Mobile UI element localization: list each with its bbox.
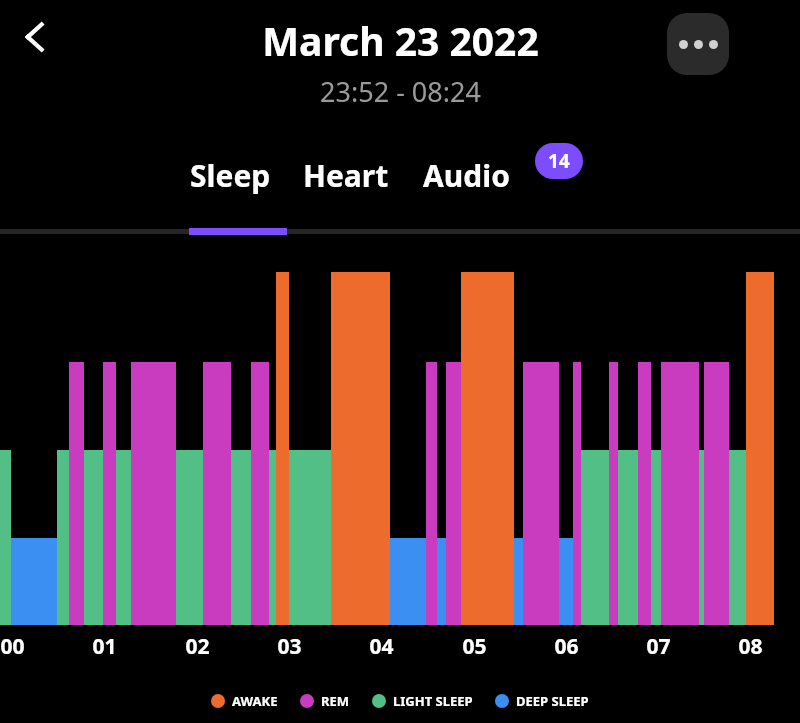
button[interactable]: Back [6,8,64,66]
staticText: 14 [548,148,570,174]
staticText: Sleep [190,155,271,196]
staticText: 00 [0,632,25,661]
staticText: 08 [738,632,763,661]
button[interactable]: Heart [301,155,391,196]
staticText: 04 [369,632,394,661]
staticText: 03 [277,632,302,661]
staticText: LIGHT SLEEP [393,692,473,710]
staticText: 01 [92,632,117,661]
staticText: 02 [185,632,210,661]
staticText: Audio [423,155,510,196]
button[interactable]: Sleep [188,155,273,196]
staticText: AWAKE [232,692,278,710]
staticText: 05 [462,632,487,661]
button[interactable]: More options [667,13,729,75]
staticText: March 23 2022 [262,14,539,67]
staticText: 07 [646,632,671,661]
staticText: 23:52 - 08:24 [320,73,481,110]
staticText: Heart [303,155,389,196]
staticText: DEEP SLEEP [516,692,589,710]
staticText: 06 [554,632,579,661]
button[interactable]: Audio [421,155,512,196]
staticText: REM [321,692,350,710]
